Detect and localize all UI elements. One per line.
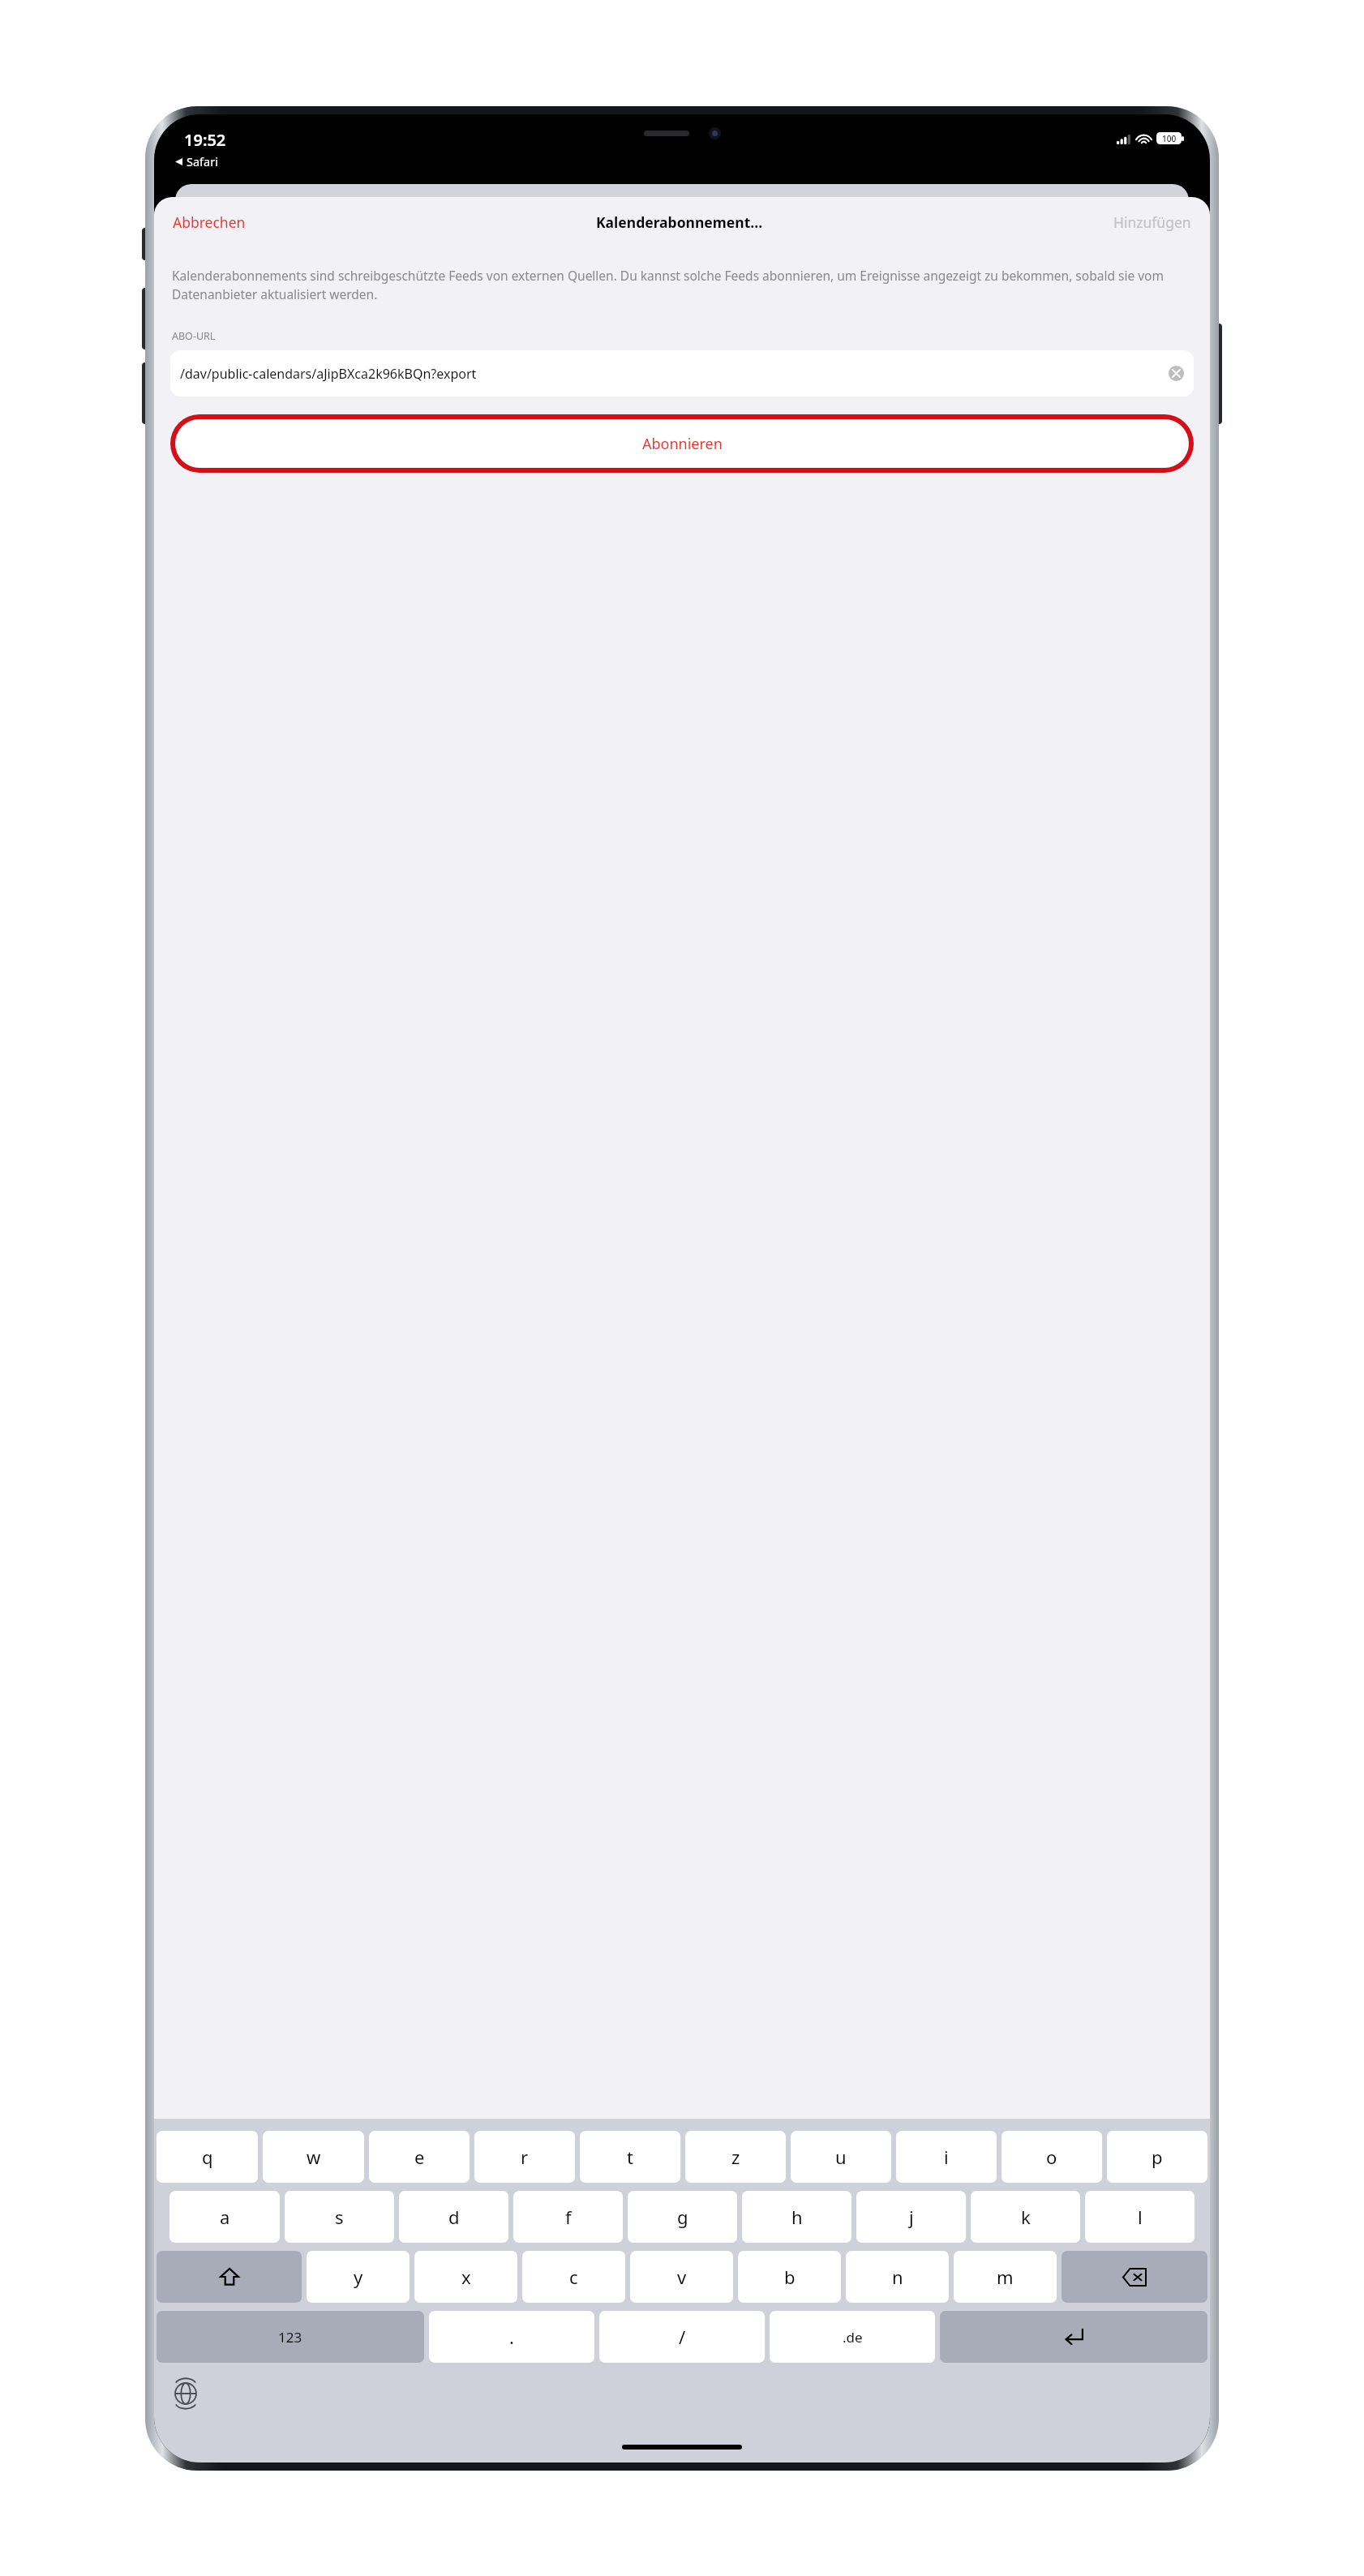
button[interactable]: Shift [157,2251,302,2303]
staticText: Abonnieren [642,434,723,454]
staticText: .de [843,2328,863,2347]
button[interactable]: Return [940,2311,1207,2363]
staticText: n [892,2265,903,2289]
button[interactable]: Backspace [1062,2251,1207,2303]
button[interactable]: d [399,2191,508,2243]
button[interactable]: a [169,2191,280,2243]
button[interactable]: . [429,2311,594,2363]
button[interactable]: u [791,2131,891,2183]
button[interactable]: m [954,2251,1057,2303]
button[interactable]: p [1107,2131,1207,2183]
staticText: /dav/public-calendars/aJipBXca2k96kBQn?e… [180,365,1164,383]
staticText: a [220,2205,230,2229]
staticText: p [1152,2145,1163,2169]
button[interactable]: k [971,2191,1080,2243]
staticText: ABO-URL [172,329,216,343]
staticText: 123 [278,2328,302,2347]
staticText: m [997,2265,1014,2289]
button[interactable]: r [474,2131,575,2183]
staticText: 19:52 [184,129,226,151]
staticText: Abbrechen [173,212,246,232]
button[interactable]: Abonnieren [175,419,1189,468]
staticText: q [202,2145,213,2169]
button[interactable]: h [742,2191,851,2243]
button[interactable]: o [1002,2131,1102,2183]
staticText: h [791,2205,803,2229]
button[interactable]: g [628,2191,737,2243]
staticText: u [835,2145,847,2169]
staticText: i [944,2145,949,2169]
staticText: 100 [1162,133,1177,144]
staticText: b [784,2265,796,2289]
staticText: k [1021,2205,1031,2229]
button[interactable]: Hinzufügen [1109,208,1196,237]
button[interactable]: Abbrechen [168,208,251,237]
button[interactable]: l [1085,2191,1195,2243]
staticText: l [1138,2205,1143,2229]
staticText: w [307,2145,321,2169]
button[interactable]: x [414,2251,517,2303]
button[interactable]: t [580,2131,680,2183]
button[interactable]: y [307,2251,410,2303]
button[interactable]: v [630,2251,733,2303]
button[interactable]: .de [770,2311,935,2363]
button[interactable]: 123 [157,2311,424,2363]
staticText: Kalenderabonnements sind schreibgeschütz… [172,267,1195,303]
button[interactable]: s [285,2191,394,2243]
staticText: / [679,2325,686,2349]
staticText: y [354,2265,363,2289]
button[interactable]: e [369,2131,470,2183]
button[interactable]: w [263,2131,364,2183]
staticText: t [627,2145,633,2169]
button[interactable]: f [513,2191,623,2243]
button[interactable]: Change keyboard [172,2380,199,2407]
staticText: d [448,2205,460,2229]
staticText: Safari [187,153,218,169]
button[interactable]: b [738,2251,841,2303]
staticText: . [509,2325,514,2349]
button[interactable]: c [522,2251,625,2303]
button[interactable]: /dav/public-calendars/aJipBXca2k96kBQn?e… [170,350,1194,396]
staticText: f [565,2205,572,2229]
staticText: o [1046,2145,1057,2169]
staticText: Hinzufügen [1113,212,1191,232]
staticText: j [909,2205,914,2229]
staticText: s [335,2205,344,2229]
staticText: r [521,2145,529,2169]
staticText: e [414,2145,425,2169]
staticText: v [677,2265,687,2289]
staticText: Kalenderabonnement… [596,212,763,232]
other: Clear text [1169,366,1184,381]
staticText: c [569,2265,578,2289]
staticText: z [731,2145,740,2169]
staticText: g [677,2205,688,2229]
button[interactable]: i [896,2131,997,2183]
button[interactable]: z [685,2131,786,2183]
button[interactable]: q [157,2131,258,2183]
button[interactable]: j [856,2191,966,2243]
button[interactable]: n [846,2251,949,2303]
staticText: x [461,2265,471,2289]
button[interactable]: / [599,2311,765,2363]
